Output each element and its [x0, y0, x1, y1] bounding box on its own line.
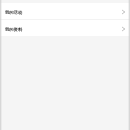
- button[interactable]: 我的活动: [0, 3, 130, 20]
- other: Open: [122, 10, 125, 14]
- staticText: 我的活动: [5, 10, 23, 15]
- staticText: 我的资料: [5, 27, 23, 32]
- staticText: 我的资料: [5, 27, 23, 32]
- other: Open: [122, 27, 125, 31]
- button[interactable]: 我的资料: [0, 20, 130, 36]
- staticText: 我的活动: [5, 10, 23, 15]
